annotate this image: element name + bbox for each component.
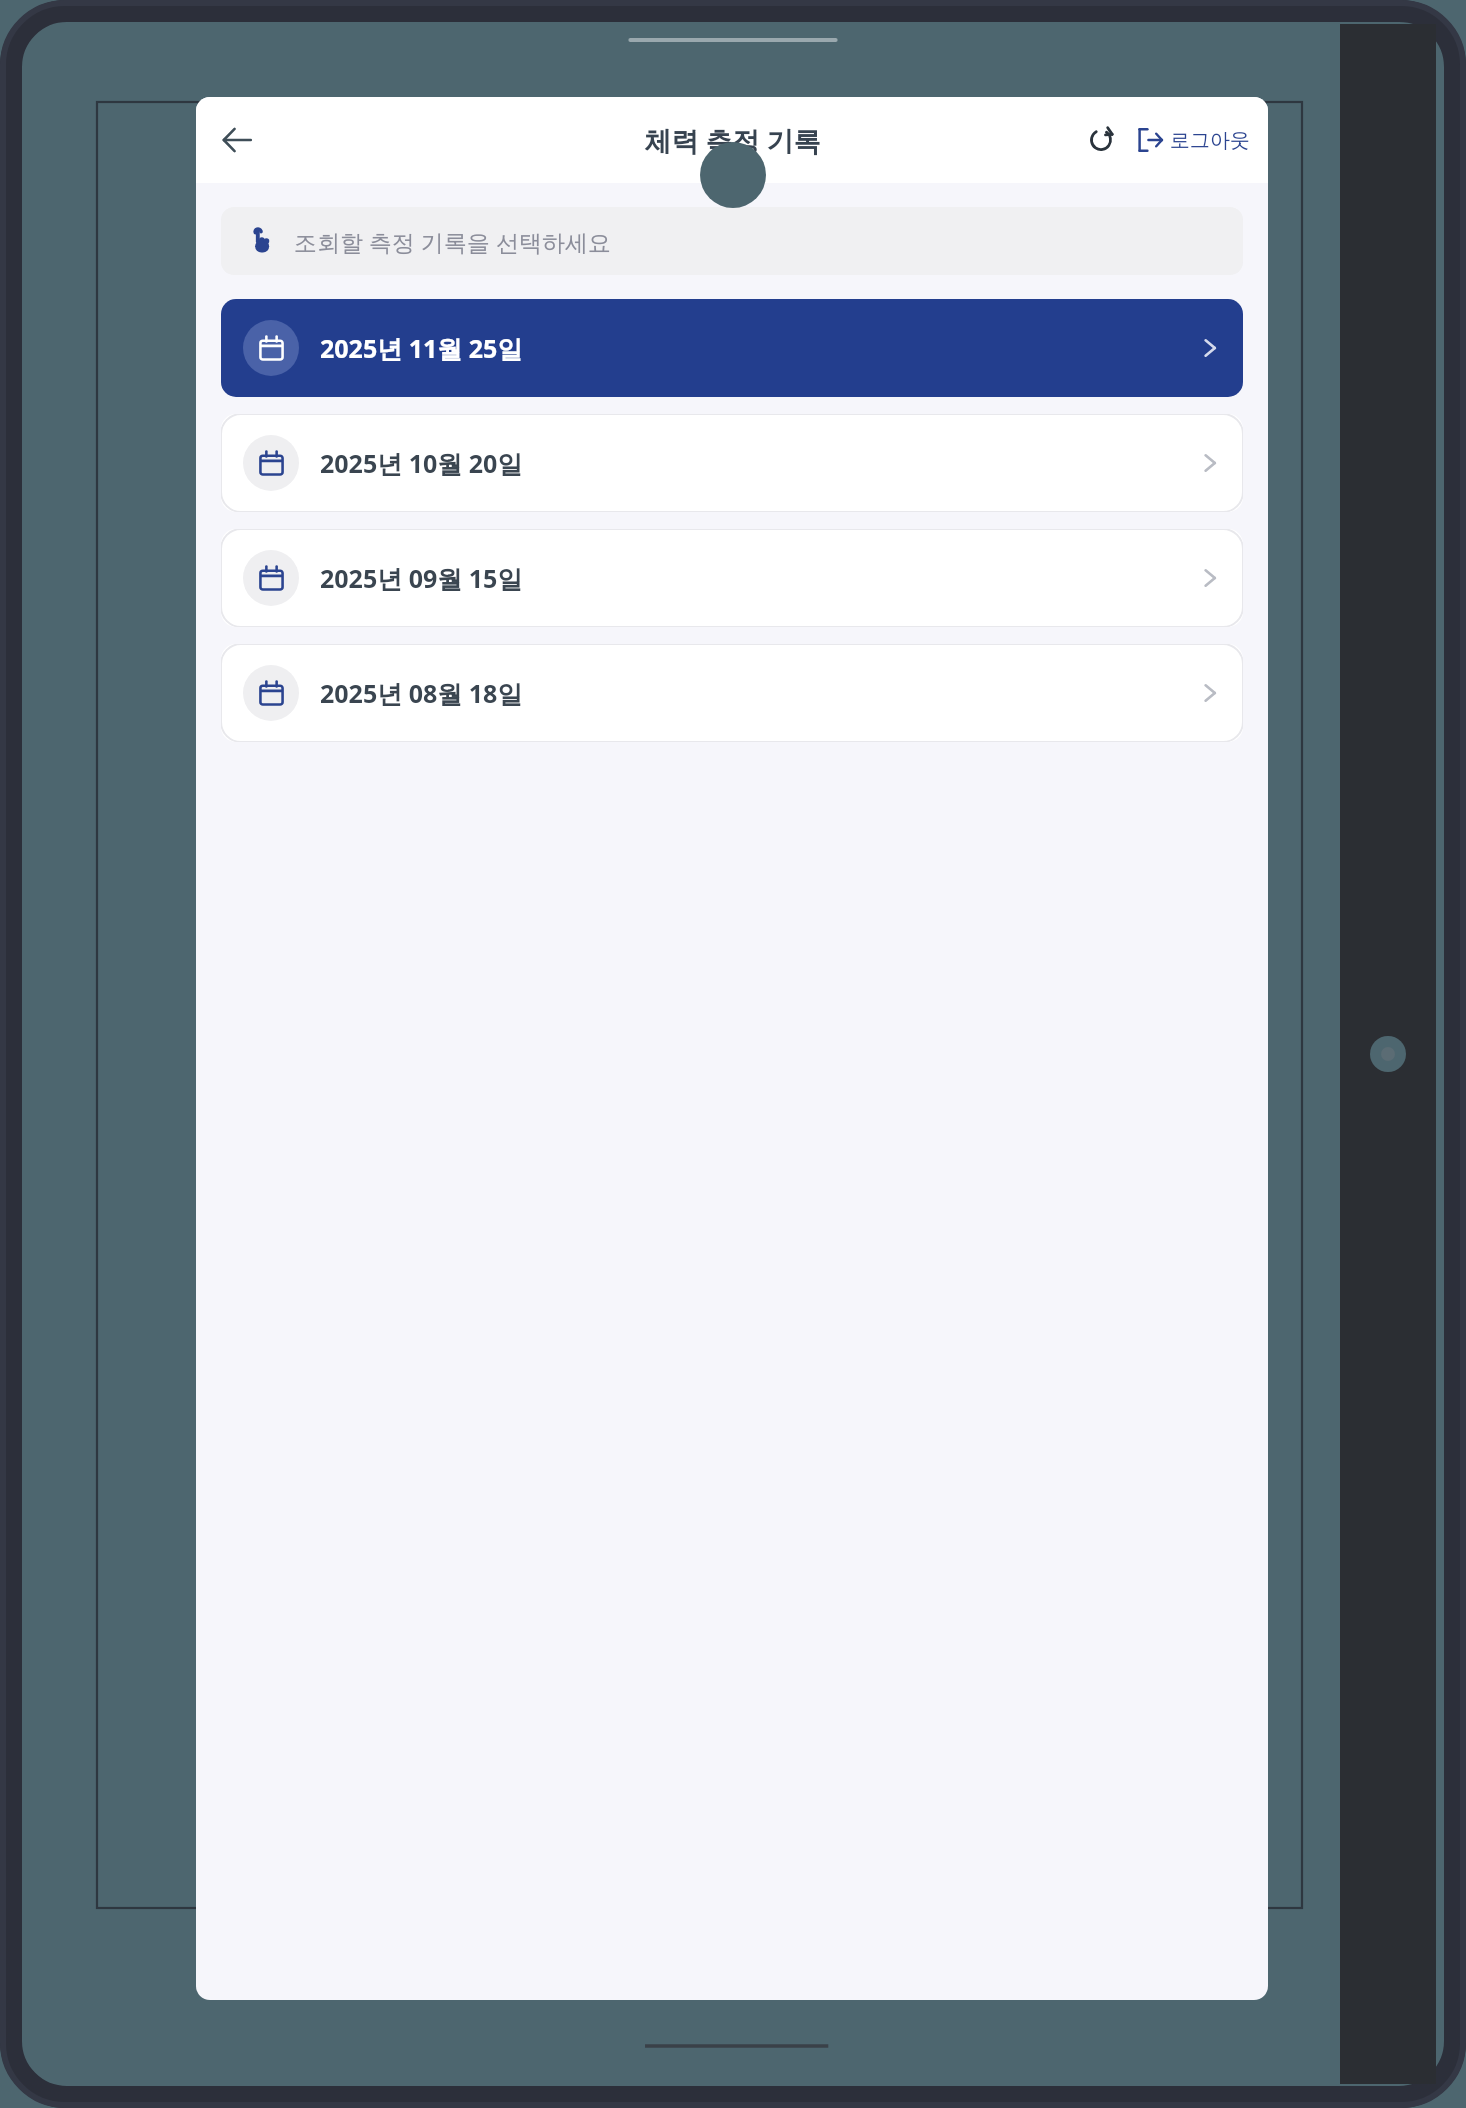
button[interactable]: Refresh <box>1075 114 1127 166</box>
staticText: 조회할 측정 기록을 선택하세요 <box>294 226 611 257</box>
staticText: 로그아웃 <box>1170 128 1250 153</box>
staticText: 2025년 09월 15일 <box>320 561 523 595</box>
button[interactable]: Back <box>206 109 268 171</box>
staticText: 2025년 11월 25일 <box>320 331 523 365</box>
button[interactable]: 2025년 10월 20일 <box>221 414 1243 512</box>
staticText: 체력 측정 기록 <box>644 122 821 159</box>
button[interactable]: 조회할 측정 기록을 선택하세요 <box>221 207 1243 275</box>
button[interactable]: 2025년 11월 25일 <box>221 299 1243 397</box>
staticText: 2025년 10월 20일 <box>320 446 523 480</box>
button[interactable]: 로그아웃 <box>1133 121 1254 159</box>
button[interactable]: 2025년 09월 15일 <box>221 529 1243 627</box>
button[interactable]: 2025년 08월 18일 <box>221 644 1243 742</box>
staticText: 2025년 08월 18일 <box>320 676 523 710</box>
